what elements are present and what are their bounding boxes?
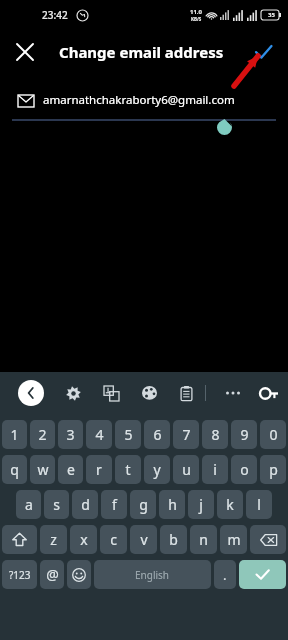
staticText: w	[37, 460, 49, 479]
staticText: m	[227, 530, 241, 549]
staticText: d	[81, 495, 90, 514]
button[interactable]: g	[130, 490, 156, 519]
button[interactable]: p	[260, 455, 286, 484]
button[interactable]: Settings	[60, 380, 86, 406]
staticText: 4	[95, 425, 104, 444]
button[interactable]: 9	[231, 420, 257, 449]
button[interactable]: Save	[246, 35, 280, 69]
button[interactable]: l	[246, 490, 272, 519]
staticText: 35	[268, 11, 275, 19]
button[interactable]: x	[70, 525, 97, 554]
button[interactable]: Clipboard	[173, 380, 199, 406]
button[interactable]: m	[220, 525, 247, 554]
staticText: v	[140, 530, 148, 549]
button[interactable]: Shift	[2, 525, 37, 554]
button[interactable]: c	[100, 525, 127, 554]
staticText: .	[223, 566, 227, 584]
button[interactable]: v	[130, 525, 157, 554]
button[interactable]: i	[202, 455, 228, 484]
staticText: r	[96, 460, 102, 479]
button[interactable]: 4	[86, 420, 112, 449]
staticText: j	[199, 495, 203, 514]
staticText: 1	[10, 425, 19, 444]
button[interactable]: f	[101, 490, 127, 519]
button[interactable]: Translate	[98, 380, 124, 406]
staticText: q	[10, 460, 19, 479]
button[interactable]: s	[44, 490, 69, 519]
button[interactable]: 6	[144, 420, 170, 449]
button[interactable]: .	[214, 560, 236, 589]
button[interactable]: 2	[30, 420, 55, 449]
button[interactable]: d	[72, 490, 98, 519]
staticText: @	[46, 565, 59, 584]
button[interactable]: @	[40, 560, 64, 589]
staticText: 5	[124, 425, 133, 444]
staticText: 9	[240, 425, 249, 444]
staticText: Change email address	[59, 42, 224, 62]
button[interactable]: a	[16, 490, 41, 519]
button[interactable]: Close	[8, 35, 42, 69]
button[interactable]: More options	[220, 380, 246, 406]
staticText: 3	[66, 425, 75, 444]
button[interactable]: r	[86, 455, 112, 484]
staticText: 11.0	[190, 8, 202, 16]
staticText: u	[182, 460, 191, 479]
staticText: n	[199, 530, 208, 549]
button[interactable]: 3	[58, 420, 83, 449]
staticText: 8	[211, 425, 220, 444]
button[interactable]: w	[30, 455, 55, 484]
button[interactable]: Emoji	[67, 560, 91, 589]
button[interactable]: 8	[202, 420, 228, 449]
staticText: b	[169, 530, 178, 549]
staticText: English	[135, 568, 170, 582]
staticText: e	[67, 460, 75, 479]
staticText: KB/S	[191, 16, 202, 22]
staticText: s	[53, 495, 60, 514]
button[interactable]: k	[217, 490, 243, 519]
staticText: 2	[38, 425, 47, 444]
staticText: y	[153, 460, 161, 479]
button[interactable]: z	[40, 525, 67, 554]
button[interactable]: Enter	[239, 560, 286, 589]
staticText: c	[110, 530, 117, 549]
button[interactable]: Back	[18, 380, 44, 406]
button[interactable]: h	[159, 490, 185, 519]
button[interactable]: English	[94, 560, 211, 589]
staticText: 7	[182, 425, 191, 444]
staticText: k	[226, 495, 234, 514]
button[interactable]: b	[160, 525, 187, 554]
staticText: p	[269, 460, 278, 479]
staticText: h	[168, 495, 177, 514]
staticText: x	[80, 530, 88, 549]
button[interactable]: Password	[256, 380, 282, 406]
staticText: 6	[153, 425, 162, 444]
button[interactable]: u	[173, 455, 199, 484]
staticText: f	[112, 495, 117, 514]
staticText: a	[25, 495, 33, 514]
staticText: l	[257, 495, 261, 514]
button[interactable]: 7	[173, 420, 199, 449]
button[interactable]: Themes	[136, 380, 162, 406]
button[interactable]: t	[115, 455, 141, 484]
staticText: o	[240, 460, 249, 479]
button[interactable]: 0	[260, 420, 286, 449]
staticText: 23:42	[42, 8, 68, 22]
staticText: g	[139, 495, 148, 514]
button[interactable]: o	[231, 455, 257, 484]
staticText: i	[213, 460, 217, 479]
button[interactable]: n	[190, 525, 217, 554]
button[interactable]: 1	[2, 420, 27, 449]
button[interactable]: 5	[115, 420, 141, 449]
button[interactable]: e	[58, 455, 83, 484]
button[interactable]: y	[144, 455, 170, 484]
button[interactable]: j	[188, 490, 214, 519]
staticText: z	[50, 530, 57, 549]
button[interactable]: q	[2, 455, 27, 484]
button[interactable]: ?123	[2, 560, 37, 589]
staticText: amarnathchakraborty6@gmail.com	[43, 92, 235, 108]
staticText: 0	[269, 425, 278, 444]
staticText: t	[125, 460, 131, 479]
staticText: ?123	[9, 568, 31, 582]
button[interactable]: Backspace	[250, 525, 286, 554]
